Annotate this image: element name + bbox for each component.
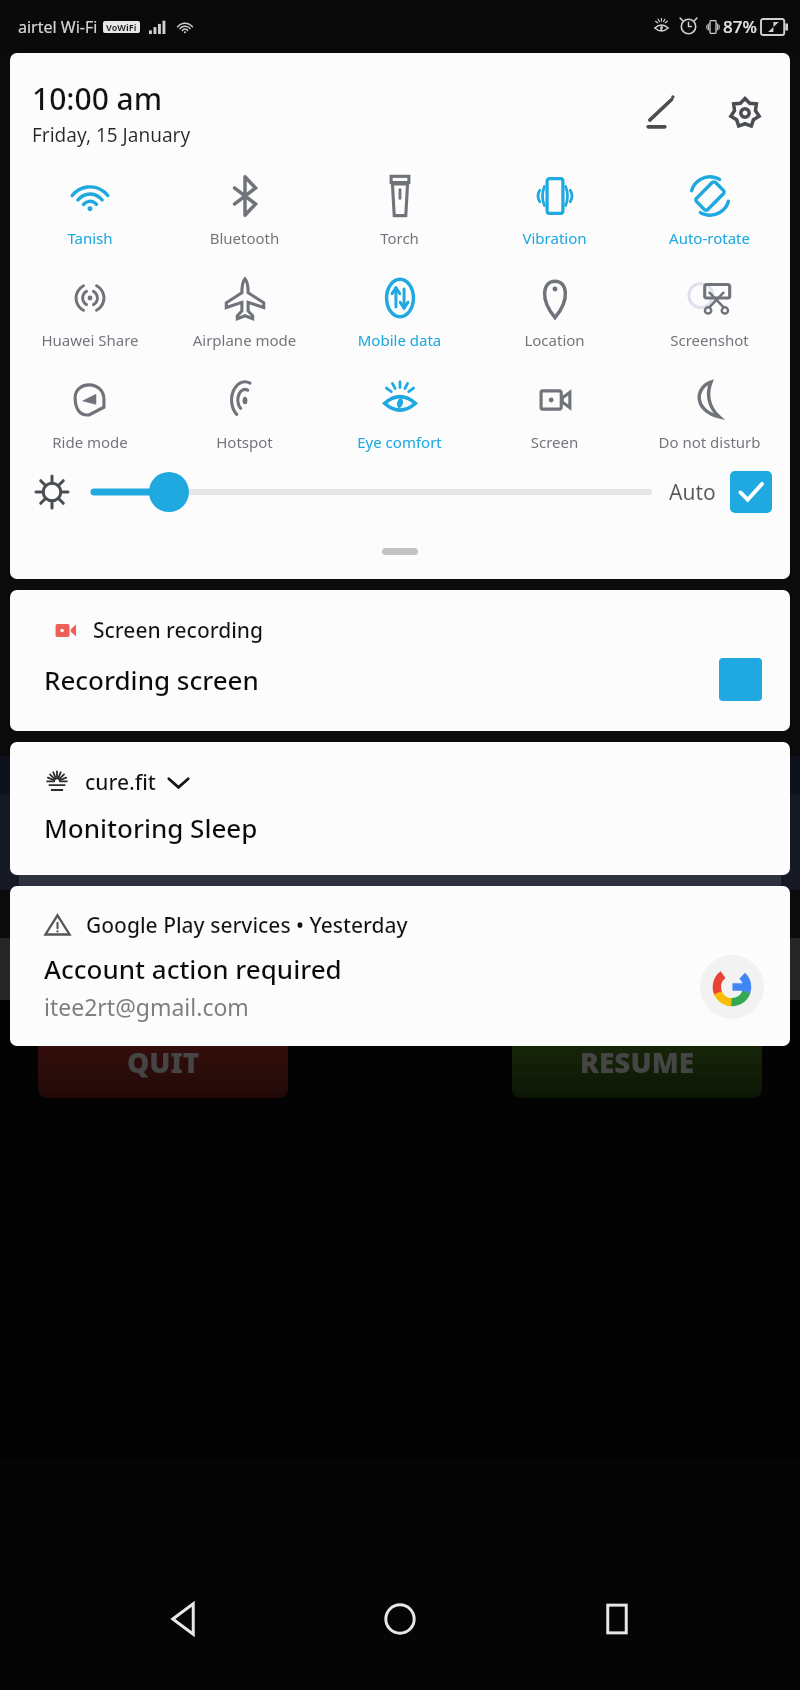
button[interactable]: Mobile data bbox=[322, 272, 477, 352]
staticText: Mobile data bbox=[322, 330, 477, 350]
button[interactable]: Recents bbox=[584, 1586, 650, 1652]
button[interactable]: Screen recording bbox=[10, 590, 790, 731]
staticText: Screenshot bbox=[632, 330, 787, 350]
button[interactable]: Hotspot bbox=[167, 374, 322, 454]
button[interactable]: Expand notification bbox=[165, 769, 192, 796]
staticText: Location bbox=[477, 330, 632, 350]
button[interactable]: Screen bbox=[477, 374, 632, 454]
staticText: Monitoring Sleep bbox=[44, 810, 258, 845]
staticText: Airplane mode bbox=[167, 330, 322, 350]
button[interactable]: QUIT bbox=[38, 1026, 288, 1098]
staticText: Vibration bbox=[477, 228, 632, 248]
button[interactable]: Back bbox=[151, 1586, 217, 1652]
staticText: Screen bbox=[477, 432, 632, 452]
button[interactable]: Google Play services • Yesterday bbox=[10, 886, 790, 1046]
button[interactable]: cure.fit bbox=[10, 742, 790, 875]
staticText: Account action required bbox=[44, 951, 342, 986]
staticText: Auto bbox=[669, 478, 716, 507]
staticText: itee2rt@gmail.com bbox=[44, 991, 249, 1022]
button[interactable]: Huawei Share bbox=[13, 272, 167, 352]
button[interactable]: Do not disturb bbox=[632, 374, 787, 454]
staticText: Bluetooth bbox=[167, 228, 322, 248]
staticText: Huawei Share bbox=[13, 330, 167, 350]
staticText: 87% bbox=[723, 15, 757, 38]
staticText: VoWiFi bbox=[106, 21, 137, 33]
staticText: Tanish bbox=[13, 228, 167, 248]
staticText: Auto-rotate bbox=[632, 228, 787, 248]
button[interactable]: RESUME bbox=[512, 1026, 762, 1098]
button[interactable]: Vibration bbox=[477, 170, 632, 250]
button[interactable]: Stop recording bbox=[719, 658, 762, 701]
staticText: Complete this mission bbox=[41, 829, 263, 856]
staticText: Google Play services • Yesterday bbox=[86, 911, 408, 940]
button[interactable]: Screenshot bbox=[632, 272, 787, 352]
staticText: Ride mode bbox=[13, 432, 167, 452]
button[interactable]: Bluetooth bbox=[167, 170, 322, 250]
staticText: 10:00 am bbox=[32, 78, 163, 119]
button[interactable]: Tanish bbox=[13, 170, 167, 250]
staticText: Recording screen bbox=[44, 662, 719, 697]
button[interactable]: Auto-rotate bbox=[632, 170, 787, 250]
staticText: RESUME bbox=[580, 1043, 695, 1081]
staticText: cure.fit bbox=[85, 768, 156, 797]
staticText: Screen recording bbox=[93, 616, 264, 645]
button[interactable]: Auto brightness bbox=[730, 471, 772, 513]
button[interactable]: Torch bbox=[322, 170, 477, 250]
button[interactable]: Eye comfort bbox=[322, 374, 477, 454]
button[interactable]: Edit bbox=[630, 84, 688, 142]
staticText: QUIT bbox=[127, 1043, 200, 1081]
staticText: Do not disturb bbox=[632, 432, 787, 452]
staticText: Torch bbox=[322, 228, 477, 248]
button[interactable]: Brightness bbox=[94, 471, 649, 513]
staticText: Hotspot bbox=[167, 432, 322, 452]
button[interactable]: Home bbox=[367, 1586, 433, 1652]
button[interactable]: Airplane mode bbox=[167, 272, 322, 352]
button[interactable]: Ride mode bbox=[13, 374, 167, 454]
button[interactable]: Settings bbox=[716, 84, 774, 142]
staticText: Eye comfort bbox=[322, 432, 477, 452]
staticText: airtel Wi-Fi bbox=[18, 16, 98, 38]
staticText: Friday, 15 January bbox=[32, 122, 191, 148]
button[interactable]: Location bbox=[477, 272, 632, 352]
